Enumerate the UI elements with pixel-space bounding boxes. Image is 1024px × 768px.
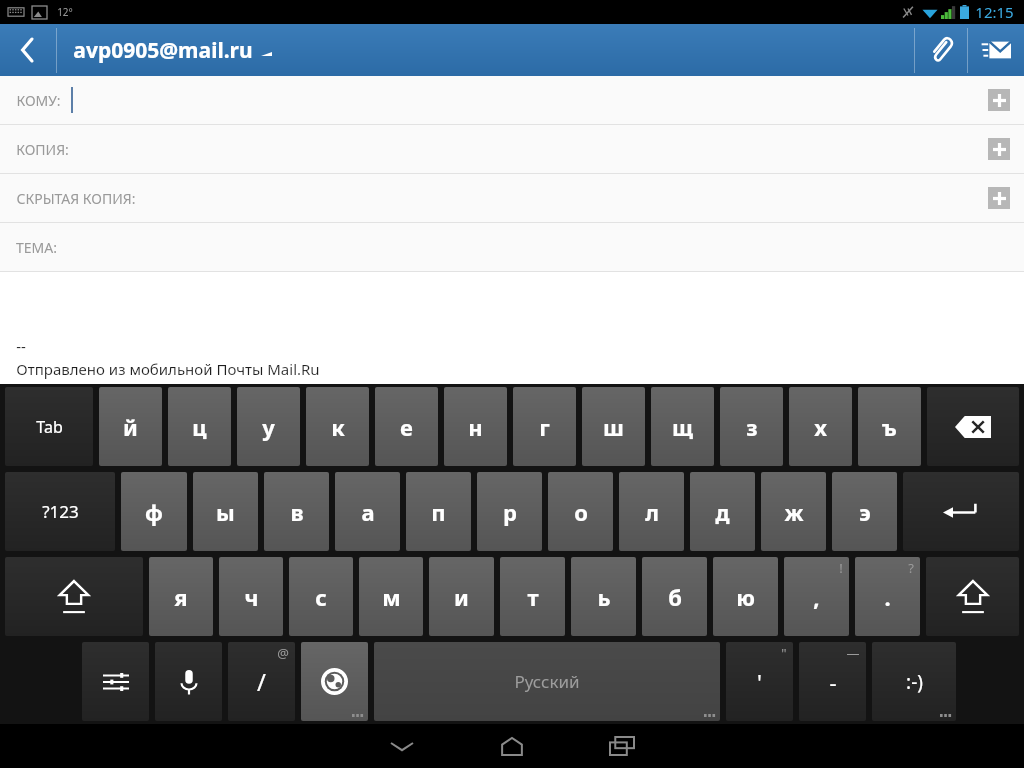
staticText: л [645,497,659,527]
button[interactable]: д [690,472,755,551]
button[interactable]: СКРЫТАЯ КОПИЯ: [0,174,1024,222]
button[interactable]: Voice input [155,642,222,721]
button[interactable]: п [406,472,471,551]
button[interactable]: ц [168,387,231,466]
button[interactable]: т [500,557,565,636]
button[interactable]: Hide keyboard [378,724,426,768]
button[interactable]: ь [571,557,636,636]
button[interactable]: у [237,387,300,466]
button[interactable]: - [799,642,866,721]
staticText: ъ [882,412,897,442]
button[interactable]: к [306,387,369,466]
button[interactable]: щ [651,387,714,466]
button[interactable]: Backspace [927,387,1019,466]
button[interactable]: э [832,472,897,551]
staticText: — [846,644,860,662]
staticText: " [781,644,787,662]
staticText: 12:15 [975,2,1014,22]
button[interactable]: м [359,557,423,636]
staticText: ж [784,497,804,527]
button[interactable]: avp0905@mail.ru [73,24,914,76]
button[interactable]: о [548,472,613,551]
button[interactable]: я [149,557,213,636]
button[interactable]: и [429,557,494,636]
button[interactable]: -- [0,272,1024,379]
button[interactable]: Shift [926,557,1019,636]
button[interactable]: ч [219,557,283,636]
staticText: х [814,412,827,442]
button[interactable]: х [789,387,852,466]
staticText: ю [736,582,755,612]
staticText: Отправлено из мобильной Почты Mail.Ru [16,359,320,379]
staticText: Русский [514,670,580,693]
staticText: з [746,412,758,442]
button[interactable]: ' [726,642,793,721]
button[interactable]: е [375,387,438,466]
staticText: ф [145,497,163,527]
button[interactable]: г [513,387,576,466]
button[interactable]: й [99,387,162,466]
button[interactable]: ж [761,472,826,551]
button[interactable]: / [228,642,295,721]
staticText: р [503,497,517,527]
button[interactable]: Tab [5,387,93,466]
button[interactable]: р [477,472,542,551]
button[interactable]: л [619,472,684,551]
button[interactable]: Add recipient [988,89,1010,111]
staticText: д [715,497,730,527]
button[interactable]: с [289,557,353,636]
button[interactable]: Home [488,724,536,768]
staticText: к [331,412,345,442]
button[interactable]: з [720,387,783,466]
staticText: й [123,412,138,442]
button[interactable]: Add recipient [988,138,1010,160]
button[interactable]: КОМУ: [0,76,1024,124]
staticText: т [527,582,539,612]
staticText: е [400,412,413,442]
staticText: @ [277,644,289,662]
button[interactable]: Русский [374,642,720,721]
staticText: 12° [57,5,73,19]
button[interactable]: :-) [872,642,956,721]
button[interactable]: ш [582,387,645,466]
staticText: ?123 [42,500,79,523]
staticText: :-) [906,669,923,695]
button[interactable]: ю [713,557,778,636]
button[interactable]: Recent apps [598,724,646,768]
button[interactable]: Add recipient [988,187,1010,209]
button[interactable]: Change language [301,642,368,721]
button[interactable]: ?123 [5,472,115,551]
staticText: avp0905@mail.ru [73,36,253,65]
staticText: ! [839,559,843,577]
staticText: б [668,582,682,612]
button[interactable]: а [335,472,400,551]
staticText: КОПИЯ: [16,140,69,159]
staticText: -- [16,336,26,356]
staticText: . [884,582,891,612]
staticText: Tab [36,416,63,438]
button[interactable]: ъ [858,387,921,466]
button[interactable]: Enter [903,472,1019,551]
button[interactable]: ТЕМА: [0,223,1024,271]
button[interactable]: . [855,557,920,636]
button[interactable]: КОПИЯ: [0,125,1024,173]
button[interactable]: Back [0,24,56,76]
button[interactable]: , [784,557,849,636]
button[interactable]: б [642,557,707,636]
staticText: г [539,412,550,442]
button[interactable]: ф [121,472,187,551]
button[interactable]: Shift [5,557,143,636]
staticText: о [574,497,588,527]
button[interactable]: в [264,472,329,551]
button[interactable]: Input settings [82,642,149,721]
button[interactable]: Send [968,24,1024,76]
staticText: м [382,582,401,612]
staticText: КОМУ: [16,91,61,110]
staticText: я [174,582,188,612]
button[interactable]: Attach [915,24,967,76]
staticText: СКРЫТАЯ КОПИЯ: [16,189,136,208]
button[interactable]: ы [193,472,258,551]
staticText: ц [192,412,207,442]
staticText: / [257,665,266,698]
button[interactable]: н [444,387,507,466]
